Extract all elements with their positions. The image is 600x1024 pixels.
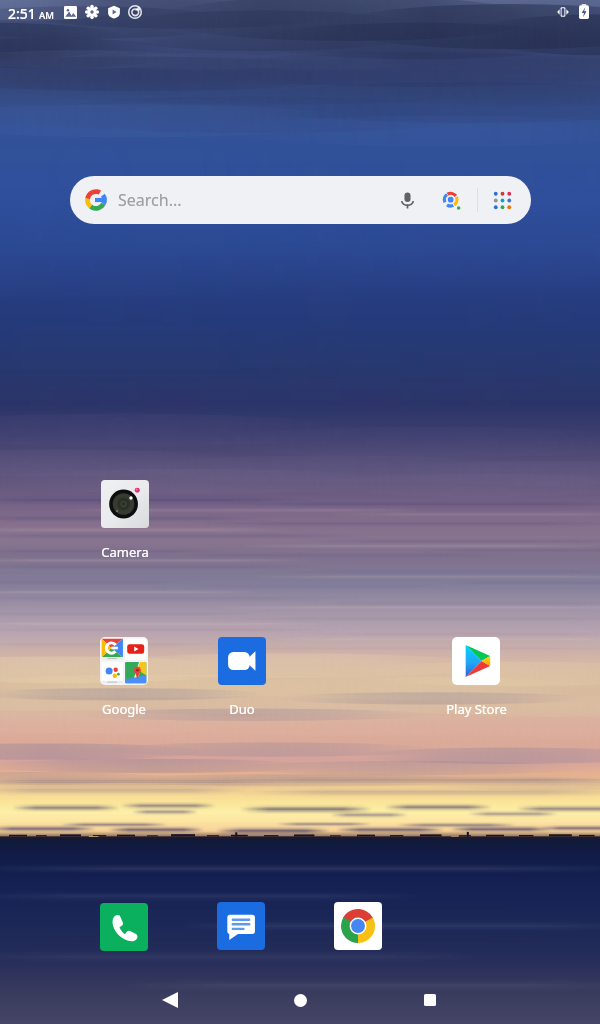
button[interactable]: Voice search bbox=[392, 176, 422, 224]
staticText: AM bbox=[39, 9, 54, 22]
button[interactable]: Camera bbox=[89, 480, 161, 561]
staticText: Play Store bbox=[446, 700, 507, 718]
button[interactable]: Google Lens bbox=[436, 176, 466, 224]
staticText: 2:51 bbox=[8, 4, 36, 23]
button[interactable]: Google bbox=[88, 637, 160, 718]
button[interactable]: Home bbox=[276, 976, 324, 1024]
staticText: Search... bbox=[118, 189, 182, 211]
staticText: Google bbox=[102, 700, 146, 718]
staticText: Camera bbox=[101, 543, 149, 561]
staticText: Duo bbox=[229, 700, 255, 718]
button[interactable]: Apps bbox=[487, 176, 517, 224]
button[interactable]: Search bbox=[70, 176, 531, 224]
button[interactable]: Recents bbox=[406, 976, 454, 1024]
button[interactable]: Back bbox=[146, 976, 194, 1024]
button[interactable]: Play Store bbox=[440, 637, 512, 718]
button[interactable]: Phone bbox=[100, 903, 148, 951]
button[interactable]: Duo bbox=[206, 637, 278, 718]
button[interactable]: Chrome bbox=[334, 902, 382, 950]
button[interactable]: Messages bbox=[217, 902, 265, 950]
